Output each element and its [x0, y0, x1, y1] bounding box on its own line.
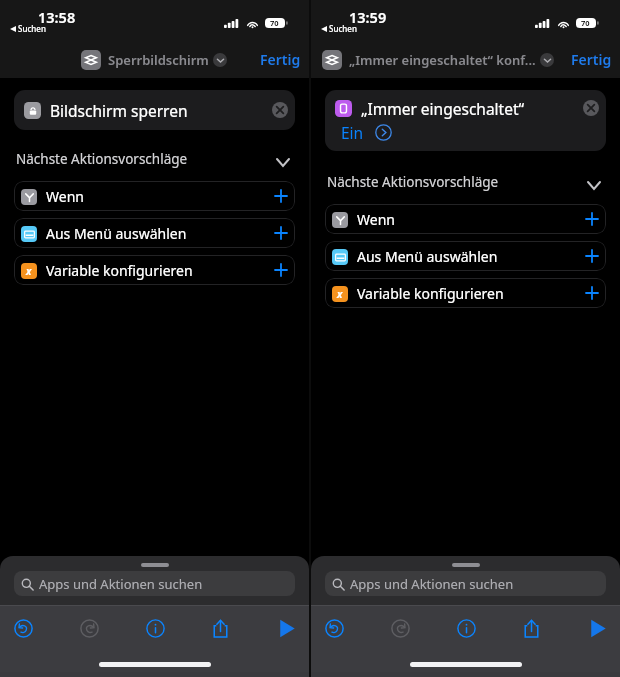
button[interactable]: Ein [341, 122, 364, 143]
staticText: Fertig [571, 50, 612, 69]
staticText: Aus Menü auswählen [46, 224, 187, 243]
button[interactable]: Teilen [197, 610, 243, 646]
button[interactable]: Rückgängig [0, 610, 46, 646]
button[interactable]: Info [132, 610, 178, 646]
button[interactable]: Hinzufügen [272, 261, 290, 279]
button[interactable]: Nächste Aktionsvorschläge [16, 150, 289, 168]
button[interactable]: Aus Menü auswählen [14, 218, 295, 248]
staticText: Apps und Aktionen suchen [350, 575, 514, 593]
staticText: Ein [341, 122, 364, 143]
staticText: Suchen [329, 23, 357, 34]
button[interactable]: Hinzufügen [583, 247, 601, 265]
staticText: Suchen [18, 23, 46, 34]
button[interactable]: Hinzufügen [272, 187, 290, 205]
button[interactable]: Wiederholen [66, 610, 112, 646]
staticText: Nächste Aktionsvorschläge [327, 173, 499, 191]
staticText: Wenn [357, 210, 395, 229]
button[interactable]: Rückgängig [311, 610, 357, 646]
staticText: 70 [581, 18, 590, 28]
button[interactable]: Apps und Aktionen suchen [325, 571, 606, 596]
button[interactable]: x [325, 278, 606, 308]
button[interactable]: Hinzufügen [272, 224, 290, 242]
staticText: Wenn [46, 187, 84, 206]
staticText: „Immer eingeschaltet“ konf... [349, 51, 538, 69]
staticText: Bildschirm sperren [50, 100, 188, 121]
staticText: Fertig [260, 50, 301, 69]
button[interactable]: Abspielen [263, 610, 309, 646]
button[interactable]: Entfernen [583, 100, 599, 116]
staticText: x [26, 264, 32, 278]
button[interactable]: Wenn [325, 204, 606, 234]
staticText: Apps und Aktionen suchen [39, 575, 203, 593]
staticText: Sperrbildschirm [108, 51, 211, 69]
staticText: „Immer eingeschaltet“ [361, 98, 525, 119]
staticText: Nächste Aktionsvorschläge [16, 150, 188, 168]
button[interactable]: x [14, 255, 295, 285]
button[interactable]: Entfernen [272, 102, 288, 118]
staticText: 70 [270, 18, 279, 28]
button[interactable]: Hinzufügen [583, 210, 601, 228]
button[interactable]: Weiter [375, 124, 392, 141]
staticText: x [337, 287, 343, 301]
button[interactable]: Abspielen [574, 610, 620, 646]
staticText: Variable konfigurieren [46, 261, 193, 280]
staticText: 13:59 [349, 7, 387, 27]
button[interactable]: Apps und Aktionen suchen [14, 571, 295, 596]
button[interactable]: Wiederholen [377, 610, 423, 646]
staticText: Aus Menü auswählen [357, 247, 498, 266]
button[interactable]: „Immer eingeschaltet“ [325, 90, 606, 151]
button[interactable]: Nächste Aktionsvorschläge [327, 173, 600, 191]
button[interactable]: Info [443, 610, 489, 646]
staticText: Variable konfigurieren [357, 284, 504, 303]
button[interactable]: Hinzufügen [583, 284, 601, 302]
button[interactable]: Fertig [249, 44, 309, 75]
button[interactable]: Bildschirm sperren [14, 90, 295, 130]
button[interactable]: Teilen [508, 610, 554, 646]
staticText: 13:58 [38, 7, 76, 27]
button[interactable]: Fertig [560, 44, 620, 75]
button[interactable]: Wenn [14, 181, 295, 211]
button[interactable]: Aus Menü auswählen [325, 241, 606, 271]
